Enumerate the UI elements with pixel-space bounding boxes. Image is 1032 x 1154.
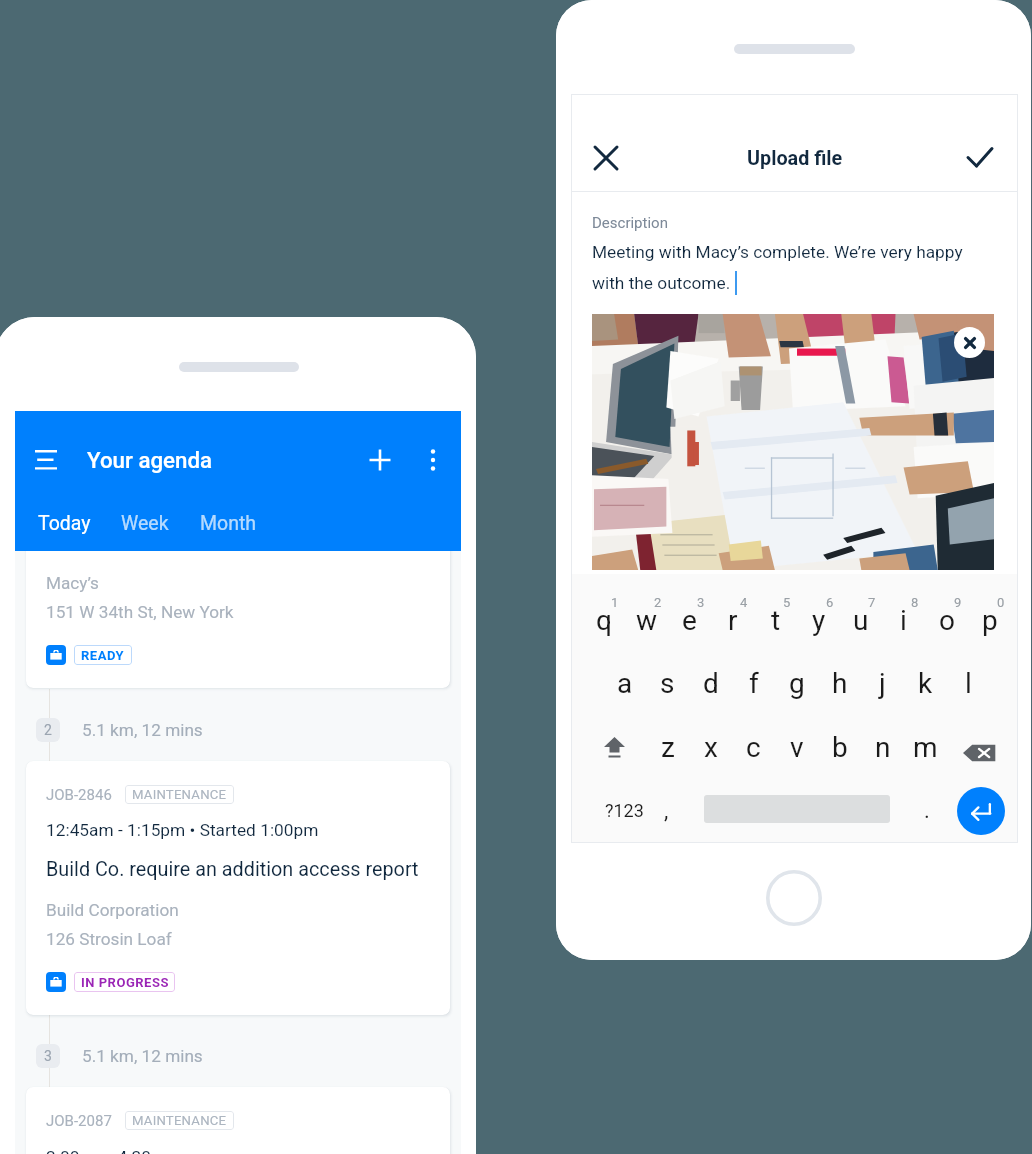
button[interactable]: 1: [582, 574, 625, 636]
staticText: o: [939, 604, 955, 637]
button[interactable]: d: [689, 658, 732, 709]
staticText: 9: [954, 595, 962, 610]
staticText: f: [749, 667, 759, 700]
button[interactable]: 8: [882, 574, 925, 636]
staticText: q: [596, 604, 612, 637]
button[interactable]: f: [732, 658, 775, 709]
staticText: Your agenda: [87, 447, 212, 473]
staticText: k: [918, 667, 933, 700]
staticText: 3: [697, 595, 705, 610]
staticText: g: [789, 667, 805, 700]
staticText: Today: [38, 512, 91, 535]
button[interactable]: Enter: [957, 787, 1005, 835]
staticText: Macy’s: [46, 573, 99, 593]
staticText: MAINTENANCE: [132, 1113, 227, 1128]
staticText: 0: [997, 595, 1005, 610]
staticText: x: [704, 731, 718, 764]
button[interactable]: 4: [711, 574, 754, 636]
button[interactable]: g: [775, 658, 818, 709]
staticText: a: [617, 667, 633, 700]
staticText: 5: [783, 595, 791, 610]
staticText: MAINTENANCE: [132, 787, 227, 802]
staticText: w: [636, 604, 658, 637]
button[interactable]: Shift: [582, 722, 646, 773]
button[interactable]: Today: [26, 502, 103, 545]
button[interactable]: v: [775, 722, 818, 773]
staticText: t: [771, 604, 781, 637]
button[interactable]: h: [818, 658, 861, 709]
button[interactable]: Home: [766, 870, 822, 926]
staticText: 7: [868, 595, 876, 610]
staticText: j: [879, 667, 886, 700]
button[interactable]: JOB-2087: [26, 1087, 450, 1154]
button[interactable]: ?123: [594, 785, 654, 836]
button[interactable]: .: [907, 785, 947, 836]
staticText: Week: [121, 512, 169, 535]
staticText: d: [703, 667, 719, 700]
button[interactable]: j: [861, 658, 904, 709]
button[interactable]: b: [818, 722, 861, 773]
staticText: 5.1 km, 12 mins: [82, 720, 203, 740]
button[interactable]: Add: [357, 437, 403, 483]
staticText: IN PROGRESS: [81, 975, 169, 990]
staticText: v: [790, 731, 804, 764]
staticText: READY: [81, 648, 125, 663]
staticText: i: [900, 604, 907, 637]
staticText: Month: [200, 512, 257, 535]
button[interactable]: Backspace: [947, 727, 1011, 778]
staticText: with the outcome.: [592, 273, 735, 293]
button[interactable]: x: [689, 722, 732, 773]
staticText: 3:00pm - 4:30pm: [46, 1147, 176, 1154]
button[interactable]: Macy’s: [26, 540, 450, 688]
staticText: z: [661, 731, 675, 764]
button[interactable]: c: [732, 722, 775, 773]
button[interactable]: 7: [839, 574, 882, 636]
button[interactable]: Week: [109, 502, 181, 545]
button[interactable]: 0: [968, 574, 1011, 636]
button[interactable]: s: [646, 658, 689, 709]
staticText: 5.1 km, 12 mins: [82, 1046, 203, 1066]
button[interactable]: a: [603, 658, 646, 709]
button[interactable]: 3: [668, 574, 711, 636]
button[interactable]: Confirm: [959, 136, 1001, 178]
button[interactable]: More options: [411, 438, 455, 482]
button[interactable]: k: [904, 658, 947, 709]
button[interactable]: 6: [797, 574, 840, 636]
button[interactable]: Remove image: [954, 327, 985, 358]
staticText: c: [746, 731, 761, 764]
staticText: Description: [592, 214, 668, 232]
staticText: .: [924, 798, 930, 824]
staticText: b: [832, 731, 848, 764]
staticText: ?123: [605, 800, 644, 821]
button[interactable]: ,: [646, 785, 686, 836]
button[interactable]: z: [646, 722, 689, 773]
button[interactable]: m: [904, 722, 947, 773]
button[interactable]: Menu: [25, 439, 67, 481]
staticText: l: [965, 667, 972, 700]
staticText: r: [728, 604, 738, 637]
button[interactable]: 2: [625, 574, 668, 636]
staticText: h: [832, 667, 848, 700]
staticText: 151 W 34th St, New York: [46, 602, 234, 622]
staticText: p: [982, 604, 998, 637]
staticText: Build Corporation: [46, 900, 179, 920]
staticText: 6: [826, 595, 834, 610]
button[interactable]: Close: [585, 137, 627, 179]
staticText: e: [682, 604, 697, 637]
staticText: Meeting with Macy’s complete. We’re very…: [592, 242, 963, 262]
button[interactable]: 5: [754, 574, 797, 636]
button[interactable]: l: [947, 658, 990, 709]
staticText: 1: [611, 595, 619, 610]
button[interactable]: n: [861, 722, 904, 773]
staticText: 3: [44, 1048, 52, 1064]
staticText: ,: [664, 798, 669, 824]
button[interactable]: Month: [188, 502, 269, 545]
staticText: JOB-2846: [46, 786, 112, 804]
button[interactable]: JOB-2846: [26, 761, 450, 1015]
staticText: n: [875, 731, 891, 764]
staticText: m: [913, 731, 938, 764]
button[interactable]: 9: [925, 574, 968, 636]
staticText: Upload file: [747, 147, 843, 170]
staticText: Build Co. require an addition access rep…: [46, 858, 419, 881]
